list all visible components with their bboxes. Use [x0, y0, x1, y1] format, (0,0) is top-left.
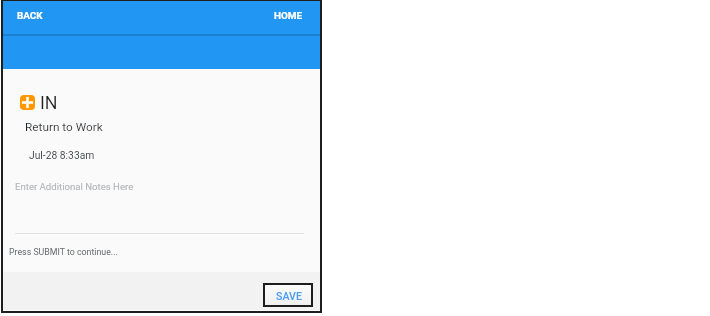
staticText: BACK: [17, 10, 43, 22]
staticText: IN: [40, 92, 58, 113]
staticText: SAVE: [276, 290, 302, 302]
button[interactable]: BACK: [3, 6, 55, 28]
staticText: Return to Work: [25, 120, 103, 134]
staticText: Jul-28 8:33am: [29, 149, 95, 161]
other: Punch in: [20, 95, 35, 110]
button[interactable]: HOME: [262, 6, 320, 28]
staticText: Enter Additional Notes Here: [15, 181, 134, 192]
button[interactable]: SAVE: [265, 285, 311, 305]
staticText: Press SUBMIT to continue...: [9, 247, 118, 257]
button[interactable]: [11, 173, 311, 197]
staticText: HOME: [274, 10, 303, 22]
